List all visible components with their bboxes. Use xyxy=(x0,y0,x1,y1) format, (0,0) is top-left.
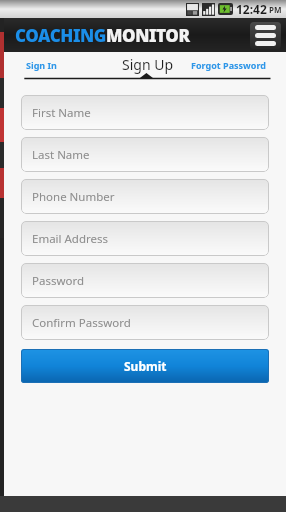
button[interactable]: Forgot Password xyxy=(191,59,266,71)
staticText: PM xyxy=(269,4,282,15)
staticText: First Name xyxy=(32,105,91,121)
button[interactable]: Sign In xyxy=(26,59,57,71)
button[interactable]: Last Name xyxy=(21,137,269,172)
button[interactable]: Email Address xyxy=(21,221,269,256)
button[interactable]: Sign Up xyxy=(122,55,174,74)
staticText: Password xyxy=(32,273,85,289)
staticText: Phone Number xyxy=(32,189,115,205)
button[interactable]: Password xyxy=(21,263,269,298)
staticText: MONITOR xyxy=(106,24,190,47)
staticText: Forgot Password xyxy=(191,59,266,71)
button[interactable]: First Name xyxy=(21,95,269,130)
button[interactable]: Phone Number xyxy=(21,179,269,214)
staticText: Submit xyxy=(124,358,167,374)
staticText: Sign Up xyxy=(122,55,174,74)
button[interactable]: Submit xyxy=(21,349,269,383)
button[interactable]: Confirm Password xyxy=(21,305,269,340)
staticText: Confirm Password xyxy=(32,315,131,331)
button[interactable]: Menu xyxy=(250,22,281,49)
staticText: COACHING xyxy=(15,24,106,47)
staticText: Last Name xyxy=(32,147,90,163)
staticText: Sign In xyxy=(26,59,57,71)
staticText: 12:42 xyxy=(236,1,267,17)
staticText: Email Address xyxy=(32,231,109,247)
